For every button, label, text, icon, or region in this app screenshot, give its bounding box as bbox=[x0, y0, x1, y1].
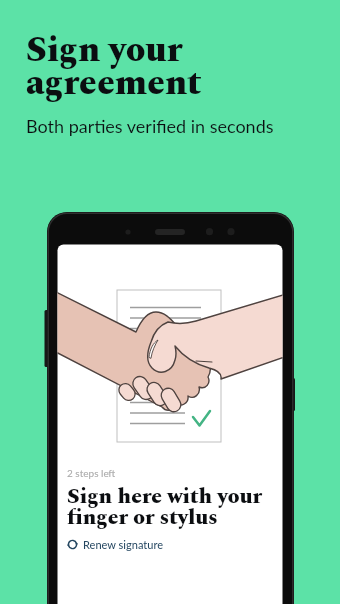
staticText: Renew signature bbox=[83, 538, 164, 551]
other: Renew signature bbox=[67, 539, 78, 550]
staticText: Sign your agreement bbox=[26, 24, 202, 110]
staticText: Sign here with your finger or stylus bbox=[67, 480, 282, 534]
staticText: 2 steps left bbox=[67, 467, 116, 479]
button[interactable]: Renew signature bbox=[67, 538, 164, 551]
staticText: Both parties verified in seconds bbox=[26, 115, 274, 137]
